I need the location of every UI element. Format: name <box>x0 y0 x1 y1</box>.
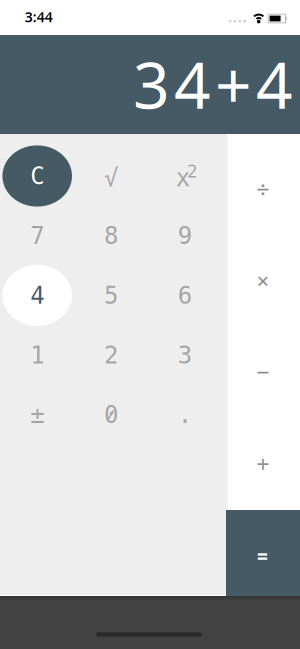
staticText: 5 <box>104 282 118 309</box>
staticText: 9 <box>178 222 192 249</box>
staticText: × <box>256 268 269 293</box>
staticText: 3:44 <box>25 7 53 26</box>
button[interactable]: 0 <box>73 385 149 445</box>
staticText: 34+4 <box>133 41 293 126</box>
button[interactable]: 2 <box>73 325 149 385</box>
staticText: C <box>30 162 44 190</box>
button[interactable]: 5 <box>73 265 149 325</box>
button[interactable]: . <box>147 385 222 445</box>
staticText: 2 <box>187 162 197 181</box>
button[interactable]: 3 <box>147 325 222 385</box>
staticText: 0 <box>104 401 118 428</box>
staticText: 8 <box>104 222 118 249</box>
button[interactable]: C <box>0 146 75 206</box>
button[interactable]: 6 <box>147 265 222 325</box>
button[interactable]: + <box>226 418 300 509</box>
button[interactable]: − <box>226 326 300 418</box>
staticText: 4 <box>30 282 44 309</box>
staticText: √ <box>104 164 118 192</box>
staticText: 3 <box>178 341 192 369</box>
staticText: − <box>256 360 269 384</box>
staticText: ± <box>30 401 44 428</box>
staticText: . <box>178 401 192 428</box>
button[interactable]: ± <box>0 385 75 445</box>
staticText: 7 <box>30 222 44 249</box>
button[interactable]: 7 <box>0 206 75 265</box>
staticText: x <box>176 164 190 192</box>
button[interactable]: Equals <box>226 510 300 596</box>
staticText: 2 <box>104 341 118 369</box>
button[interactable]: √ <box>73 148 149 208</box>
button[interactable]: 4 <box>0 265 75 325</box>
button[interactable]: × <box>226 235 300 326</box>
button[interactable]: 8 <box>73 206 149 265</box>
button[interactable]: 1 <box>0 325 75 385</box>
staticText: 1 <box>30 341 44 369</box>
button[interactable]: ÷ <box>226 143 300 235</box>
button[interactable]: x squared <box>147 146 222 206</box>
staticText: ÷ <box>256 177 269 201</box>
staticText: + <box>256 451 269 476</box>
button[interactable]: 9 <box>147 206 222 265</box>
staticText: 6 <box>178 282 192 309</box>
